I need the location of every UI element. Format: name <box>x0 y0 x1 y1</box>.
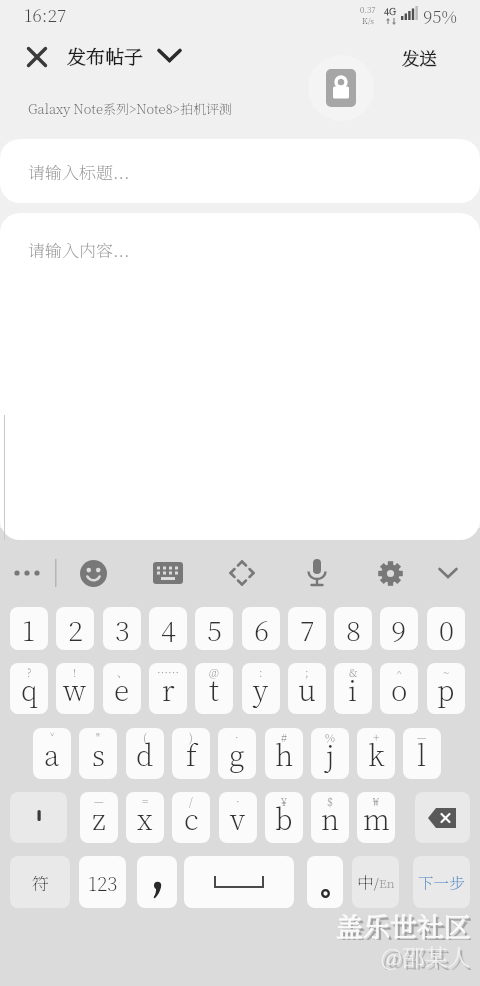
staticText: e <box>114 669 130 709</box>
button[interactable]: 7 <box>288 607 326 650</box>
button[interactable]: 0 <box>427 607 465 650</box>
button[interactable]: $ <box>311 792 349 843</box>
staticText: d <box>136 734 154 774</box>
button[interactable]: ~ <box>427 663 465 714</box>
staticText: x <box>137 798 153 838</box>
staticText: u <box>298 669 317 709</box>
button[interactable] <box>307 856 343 908</box>
button[interactable]: ; <box>288 663 326 714</box>
staticText: k <box>368 734 385 774</box>
button[interactable]: 4 <box>149 607 187 650</box>
button[interactable]: ^ <box>380 663 418 714</box>
staticText: = <box>142 793 149 809</box>
button[interactable] <box>10 792 67 843</box>
staticText: ₩ <box>373 793 379 809</box>
button[interactable]: : <box>242 663 280 714</box>
button[interactable]: @ <box>195 663 233 714</box>
button[interactable]: / <box>172 792 210 843</box>
staticText: f <box>186 734 197 774</box>
button[interactable]: · <box>218 728 256 779</box>
staticText: ! <box>73 664 77 680</box>
button[interactable]: 下一步 <box>413 856 470 908</box>
button[interactable] <box>6 557 48 589</box>
staticText: : <box>259 664 263 680</box>
button[interactable]: — <box>403 728 441 779</box>
staticText: & <box>349 664 358 680</box>
staticText: 16:27 <box>24 2 67 27</box>
button[interactable]: 123 <box>79 856 126 908</box>
button[interactable] <box>415 792 470 843</box>
button[interactable]: ? <box>10 663 48 714</box>
button[interactable]: 请输入标题... <box>0 139 480 203</box>
button[interactable]: ˇ <box>33 728 71 779</box>
staticText: 0.37 <box>360 4 376 15</box>
button[interactable]: 8 <box>334 607 372 650</box>
button[interactable] <box>184 856 294 908</box>
staticText: Galaxy Note系列>Note8>拍机评测 <box>28 99 232 118</box>
staticText: n <box>321 798 340 838</box>
staticText: s <box>92 734 105 774</box>
staticText: l <box>417 734 427 774</box>
staticText: o <box>391 669 408 709</box>
staticText: @邵某人 <box>381 940 471 970</box>
button[interactable]: 1 <box>10 607 48 650</box>
button[interactable]: 请输入内容... <box>0 213 480 540</box>
button[interactable]: # <box>265 728 303 779</box>
button[interactable]: & <box>334 663 372 714</box>
button[interactable] <box>150 555 186 591</box>
button[interactable] <box>372 555 408 591</box>
button[interactable]: ) <box>172 728 210 779</box>
button[interactable]: " <box>79 728 117 779</box>
staticText: …… <box>157 664 179 680</box>
staticText: 6 <box>254 609 269 649</box>
button[interactable]: ! <box>56 663 94 714</box>
button[interactable] <box>137 856 177 908</box>
button[interactable]: 3 <box>103 607 141 650</box>
staticText: v <box>230 798 246 838</box>
staticText: — <box>94 793 104 809</box>
button[interactable]: 发送 <box>392 40 446 74</box>
button[interactable]: — <box>80 792 118 843</box>
staticText: 8 <box>346 609 361 649</box>
button[interactable]: 2 <box>56 607 94 650</box>
button[interactable]: …… <box>149 663 187 714</box>
button[interactable]: 9 <box>380 607 418 650</box>
button[interactable]: ₩ <box>357 792 395 843</box>
button[interactable] <box>224 555 260 591</box>
button[interactable]: 发布帖子 <box>67 42 181 69</box>
button[interactable]: + <box>357 728 395 779</box>
staticText: t <box>209 669 219 709</box>
button[interactable]: 6 <box>242 607 280 650</box>
button[interactable]: ( <box>126 728 164 779</box>
staticText: · <box>236 793 240 809</box>
button[interactable]: 、 <box>103 663 141 714</box>
staticText: y <box>253 669 269 709</box>
staticText: + <box>373 729 380 745</box>
staticText: ; <box>305 664 309 680</box>
button[interactable] <box>20 40 54 74</box>
button[interactable]: 中 <box>352 856 399 908</box>
button[interactable] <box>75 555 111 591</box>
staticText: ¥ <box>281 793 287 809</box>
staticText: c <box>184 798 199 838</box>
staticText: r <box>162 669 175 709</box>
staticText: ? <box>27 664 32 680</box>
staticText: a <box>44 734 60 774</box>
staticText: w <box>63 669 87 709</box>
staticText: ) <box>189 729 193 745</box>
button[interactable]: · <box>219 792 257 843</box>
button[interactable] <box>430 555 466 591</box>
staticText: m <box>363 798 390 838</box>
button[interactable]: 符 <box>10 856 70 908</box>
staticText: p <box>437 669 455 709</box>
button[interactable]: ¥ <box>265 792 303 843</box>
button[interactable] <box>299 555 335 591</box>
button[interactable]: = <box>126 792 164 843</box>
staticText: K/s <box>362 15 374 26</box>
button[interactable]: % <box>311 728 349 779</box>
staticText: · <box>235 729 239 745</box>
staticText: j <box>326 734 335 774</box>
staticText: ^ <box>396 664 403 680</box>
staticText: " <box>96 729 100 745</box>
button[interactable]: 5 <box>195 607 233 650</box>
